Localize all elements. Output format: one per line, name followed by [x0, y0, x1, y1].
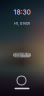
staticText: Swipe up to open [14, 52, 30, 58]
button[interactable]: Swipe up to open [13, 53, 31, 57]
staticText: 18:30 [13, 8, 30, 16]
staticText: Fri, 8 Nov [14, 21, 30, 26]
button[interactable]: Face ID [17, 76, 26, 85]
